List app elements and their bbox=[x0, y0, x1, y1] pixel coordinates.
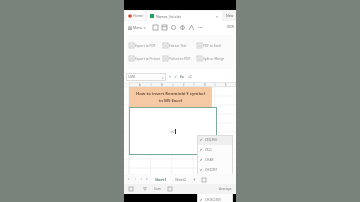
button[interactable]: SUM bbox=[128, 73, 164, 81]
button[interactable]: Tool 3 bbox=[169, 23, 178, 32]
staticText: + bbox=[193, 177, 196, 183]
button[interactable]: New bbox=[224, 11, 236, 20]
staticText: Sheet1 bbox=[155, 177, 167, 182]
staticText: CHIDIST bbox=[205, 168, 218, 172]
staticText: =C bbox=[188, 74, 193, 79]
button[interactable]: Home bbox=[124, 0, 236, 202]
button[interactable]: Add sheet bbox=[191, 176, 198, 183]
button[interactable]: Export to PDF bbox=[129, 42, 163, 49]
button[interactable]: PDF to Excel bbox=[197, 42, 231, 49]
button[interactable]: CHIDIST bbox=[197, 165, 233, 175]
staticText: ‹ bbox=[135, 177, 136, 181]
button[interactable]: Sheet list bbox=[200, 176, 207, 183]
button[interactable]: CHIINV bbox=[197, 175, 233, 185]
button[interactable]: Filter bbox=[142, 186, 148, 192]
staticText: Home bbox=[133, 13, 143, 18]
staticText: E bbox=[225, 83, 227, 87]
staticText: Sheet2 bbox=[175, 177, 186, 182]
staticText: Picture to PDF bbox=[169, 57, 191, 61]
button[interactable]: D bbox=[194, 82, 215, 87]
staticText: New bbox=[226, 13, 234, 18]
staticText: ROW bbox=[227, 25, 234, 29]
button[interactable]: Extract Text bbox=[163, 42, 197, 49]
button[interactable]: A bbox=[129, 82, 151, 87]
button[interactable]: Sheet2 bbox=[175, 175, 186, 183]
button[interactable]: How to insert Renminbi ¥ symbol in MS Ex… bbox=[129, 87, 212, 107]
staticText: Split or Merge bbox=[203, 57, 225, 61]
staticText: ▾ bbox=[144, 26, 146, 29]
button[interactable]: Tool 5 bbox=[187, 23, 196, 32]
staticText: « bbox=[128, 177, 130, 181]
button[interactable]: B bbox=[151, 82, 173, 87]
button[interactable]: C bbox=[173, 82, 194, 87]
staticText: Export to PDF bbox=[135, 44, 156, 48]
button[interactable]: Split or Merge bbox=[197, 55, 231, 62]
staticText: Average: bbox=[219, 187, 233, 191]
staticText: CHAR bbox=[205, 158, 214, 162]
button[interactable]: Navigate « bbox=[126, 176, 132, 182]
staticText: fx bbox=[180, 74, 184, 79]
button[interactable]: Navigate » bbox=[144, 176, 150, 182]
button[interactable]: CHAR bbox=[197, 155, 233, 165]
staticText: Menu bbox=[133, 25, 143, 30]
staticText: A bbox=[139, 83, 141, 87]
button[interactable]: Tool 4 bbox=[178, 23, 187, 32]
staticText: C bbox=[183, 83, 185, 87]
staticText: » bbox=[146, 177, 148, 181]
button[interactable]: Tool 6 bbox=[196, 23, 205, 32]
button[interactable]: =C bbox=[129, 107, 217, 155]
button[interactable]: Picture to PDF bbox=[163, 55, 197, 62]
button[interactable]: Sheet1 bbox=[155, 175, 167, 183]
button[interactable]: CHISQ.DIST bbox=[197, 185, 233, 195]
button[interactable]: Navigate › bbox=[138, 176, 144, 182]
button[interactable]: Tool 2 bbox=[160, 23, 169, 32]
staticText: › bbox=[141, 177, 142, 181]
staticText: SUM bbox=[128, 75, 135, 79]
button[interactable]: Home bbox=[128, 11, 143, 20]
button[interactable]: CHISQ.INV bbox=[197, 195, 233, 202]
button[interactable]: E bbox=[215, 82, 236, 87]
button[interactable]: Export to Picture bbox=[129, 55, 163, 62]
button[interactable]: Copy bbox=[167, 186, 173, 192]
staticText: ✓ bbox=[174, 74, 178, 79]
staticText: CHISQ.DIST bbox=[205, 188, 223, 192]
button[interactable]: View mode bbox=[128, 186, 134, 192]
button[interactable]: CEILING bbox=[197, 135, 233, 145]
staticText: CHIINV bbox=[205, 178, 216, 182]
staticText: PDF to Excel bbox=[203, 44, 222, 48]
staticText: Extract Text bbox=[169, 44, 187, 48]
staticText: CELL bbox=[205, 148, 213, 152]
staticText: CEILING bbox=[205, 138, 218, 142]
staticText: × bbox=[169, 74, 172, 79]
staticText: D bbox=[204, 83, 206, 87]
staticText: Names_list.xlsx bbox=[156, 14, 182, 19]
button[interactable]: CELL bbox=[197, 145, 233, 155]
staticText: CHISQ.INV bbox=[205, 198, 221, 202]
staticText: ▾ bbox=[162, 76, 164, 79]
staticText: Sum bbox=[154, 187, 161, 191]
staticText: × bbox=[216, 14, 219, 19]
button[interactable]: Tool 1 bbox=[151, 23, 160, 32]
staticText: =C bbox=[170, 129, 175, 134]
button[interactable]: Names_list.xlsx bbox=[150, 11, 219, 21]
staticText: Export to Picture bbox=[135, 57, 161, 61]
staticText: How to insert Renminbi ¥ symbol in MS Ex… bbox=[136, 91, 205, 103]
staticText: B bbox=[161, 83, 163, 87]
button[interactable]: Navigate ‹ bbox=[132, 176, 138, 182]
button[interactable]: Menu bbox=[127, 24, 147, 31]
